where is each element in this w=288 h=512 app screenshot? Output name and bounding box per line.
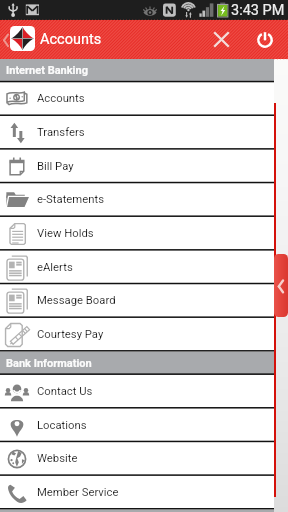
staticText: Bill Pay <box>37 160 74 173</box>
staticText: Accounts <box>40 31 102 48</box>
staticText: Website <box>37 452 78 465</box>
staticText: Accounts <box>37 92 85 105</box>
staticText: Transfers <box>37 126 85 139</box>
button[interactable]: Open navigation drawer <box>274 254 288 317</box>
other: Back <box>0 21 12 59</box>
button[interactable]: View Holds <box>0 217 274 251</box>
button[interactable]: Transfers <box>0 116 274 150</box>
staticText: Internet Banking <box>6 64 88 77</box>
staticText: 3:43 PM <box>231 2 285 19</box>
staticText: Locations <box>37 419 87 432</box>
button[interactable]: Bill Pay <box>0 150 274 184</box>
staticText: eAlerts <box>37 261 73 274</box>
button[interactable]: Message Board <box>0 284 274 318</box>
button[interactable]: Member Service <box>0 476 274 510</box>
button[interactable]: Close <box>206 20 236 59</box>
button[interactable]: Website <box>0 442 274 476</box>
button[interactable]: Locations <box>0 409 274 443</box>
staticText: Message Board <box>37 294 116 307</box>
button[interactable]: Courtesy Pay <box>0 318 274 352</box>
staticText: Bank Information <box>6 357 92 370</box>
staticText: Member Service <box>37 486 119 499</box>
button[interactable]: Accounts <box>0 82 274 116</box>
button[interactable]: Log out <box>250 20 280 59</box>
staticText: View Holds <box>37 227 94 240</box>
button[interactable]: Contact Us <box>0 375 274 409</box>
button[interactable]: eAlerts <box>0 251 274 285</box>
staticText: Courtesy Pay <box>37 328 104 341</box>
staticText: Contact Us <box>37 385 93 398</box>
button[interactable]: e-Statements <box>0 183 274 217</box>
staticText: e-Statements <box>37 193 105 206</box>
